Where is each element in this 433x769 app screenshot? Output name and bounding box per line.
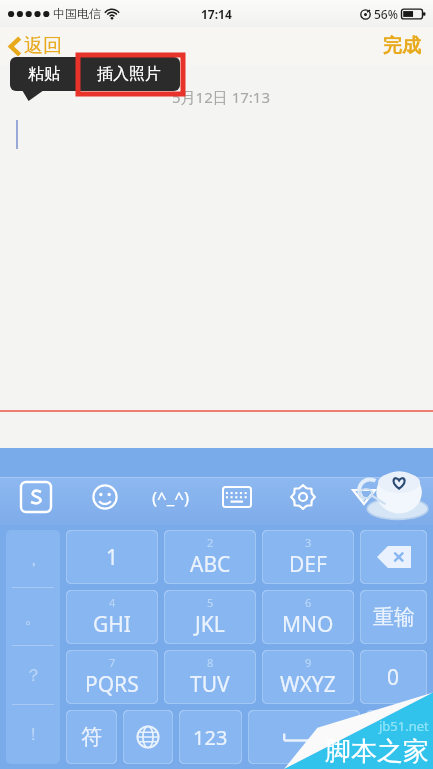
staticText: DEF: [289, 550, 327, 579]
button[interactable]: 3: [262, 530, 354, 584]
staticText: 重输: [373, 604, 415, 630]
staticText: 1: [106, 543, 119, 572]
button[interactable]: 9: [262, 650, 354, 704]
staticText: 符: [81, 724, 102, 750]
staticText: 中国电信: [53, 6, 101, 21]
button[interactable]: 8: [164, 650, 256, 704]
staticText: 4: [109, 595, 116, 610]
button[interactable]: 插入照片: [78, 57, 180, 91]
staticText: 8: [207, 655, 214, 670]
button[interactable]: 5: [164, 590, 256, 644]
staticText: ！: [25, 724, 42, 745]
staticText: 。: [25, 607, 42, 628]
staticText: 123: [193, 724, 228, 751]
button[interactable]: Delete: [360, 530, 427, 584]
staticText: MNO: [282, 610, 334, 639]
staticText: 返回: [24, 34, 62, 58]
staticText: 9: [305, 655, 312, 670]
button[interactable]: 重输: [360, 590, 427, 644]
button[interactable]: Switch language: [123, 710, 173, 764]
button[interactable]: 完成: [371, 29, 433, 63]
button[interactable]: Hide keyboard: [336, 475, 392, 519]
staticText: 插入照片: [97, 64, 161, 84]
staticText: ？: [25, 665, 42, 686]
button[interactable]: 返回: [0, 30, 72, 62]
staticText: 7: [109, 655, 116, 670]
staticText: (^_^): [152, 486, 190, 509]
staticText: WXYZ: [280, 670, 336, 699]
button[interactable]: 1: [66, 530, 158, 584]
button[interactable]: 4: [66, 590, 158, 644]
button[interactable]: Keyboard layout: [204, 475, 270, 519]
staticText: jb51.net: [379, 717, 429, 735]
staticText: 脚本之家: [325, 735, 429, 768]
staticText: 3: [305, 535, 312, 550]
staticText: ，: [25, 549, 42, 570]
button[interactable]: Kaomoji: [138, 475, 204, 519]
button[interactable]: 7: [66, 650, 158, 704]
button[interactable]: [366, 710, 427, 764]
button[interactable]: ，: [6, 530, 60, 764]
button[interactable]: 粘贴: [10, 57, 78, 91]
button[interactable]: 2: [164, 530, 256, 584]
staticText: 2: [207, 535, 214, 550]
staticText: PQRS: [85, 670, 139, 699]
staticText: 5: [207, 595, 214, 610]
staticText: 17:14: [201, 6, 232, 22]
staticText: 粘贴: [28, 64, 60, 84]
staticText: 6: [305, 595, 312, 610]
button[interactable]: 123: [179, 710, 242, 764]
button[interactable]: Space: [248, 710, 360, 764]
staticText: 5月12日 17:13: [172, 87, 270, 107]
staticText: GHI: [93, 610, 131, 639]
button[interactable]: 0: [360, 650, 427, 704]
staticText: JKL: [195, 610, 225, 639]
button[interactable]: 6: [262, 590, 354, 644]
button[interactable]: Settings: [270, 475, 336, 519]
button[interactable]: 符: [66, 710, 117, 764]
staticText: TUV: [190, 670, 230, 699]
staticText: ABC: [190, 550, 231, 579]
staticText: 56%: [374, 6, 398, 22]
button[interactable]: Sogou input method: [0, 475, 72, 519]
staticText: 0: [387, 663, 400, 692]
button[interactable]: Emoji: [72, 475, 138, 519]
